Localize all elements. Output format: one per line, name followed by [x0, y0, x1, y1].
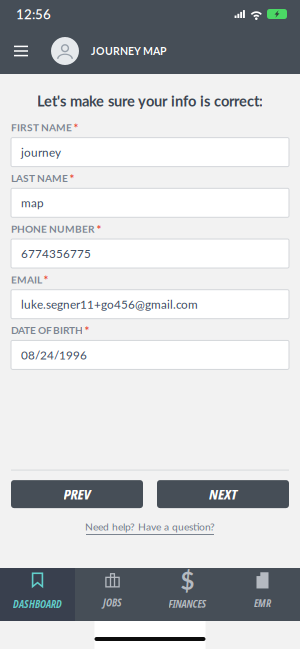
staticText: PREV — [63, 485, 90, 504]
staticText: JOBS — [103, 596, 122, 609]
staticText: 12:56 — [16, 6, 51, 22]
button[interactable]: Menu — [0, 34, 51, 68]
staticText: $ — [180, 566, 194, 595]
button[interactable]: Need help? Have a question? — [85, 521, 215, 535]
button[interactable]: 08/24/1996 — [11, 340, 289, 369]
staticText: Let's make sure your info is correct: — [37, 92, 263, 110]
staticText: * — [96, 223, 101, 236]
staticText: * — [84, 324, 89, 338]
staticText: EMAIL — [11, 273, 42, 286]
staticText: * — [73, 121, 78, 135]
staticText: DATE OF BIRTH — [11, 324, 83, 336]
button[interactable]: 6774356775 — [11, 239, 289, 268]
staticText: map — [21, 196, 44, 210]
staticText: 6774356775 — [21, 246, 91, 261]
staticText: PHONE NUMBER — [11, 223, 95, 235]
staticText: LAST NAME — [11, 172, 68, 184]
button[interactable]: luke.segner11+go456@gmail.com — [11, 290, 289, 319]
button[interactable]: map — [11, 188, 289, 217]
staticText: * — [43, 273, 48, 287]
staticText: EMR — [254, 596, 271, 610]
button[interactable]: NEXT — [157, 480, 289, 508]
staticText: journey — [21, 145, 61, 159]
staticText: 08/24/1996 — [21, 348, 87, 362]
staticText: NEXT — [209, 485, 237, 504]
button[interactable]: JOBS — [75, 568, 150, 621]
staticText: DASHBOARD — [13, 597, 62, 611]
staticText: * — [69, 172, 74, 186]
button[interactable]: EMR — [225, 568, 300, 621]
staticText: JOURNEY MAP — [91, 45, 167, 57]
staticText: luke.segner11+go456@gmail.com — [21, 297, 198, 311]
button[interactable]: $ — [150, 568, 225, 621]
staticText: Need help? Have a question? — [85, 520, 215, 533]
button[interactable]: PREV — [11, 480, 143, 508]
button[interactable]: DASHBOARD — [0, 568, 75, 621]
staticText: FIRST NAME — [11, 121, 72, 133]
staticText: FINANCES — [168, 597, 206, 611]
button[interactable]: journey — [11, 138, 289, 167]
